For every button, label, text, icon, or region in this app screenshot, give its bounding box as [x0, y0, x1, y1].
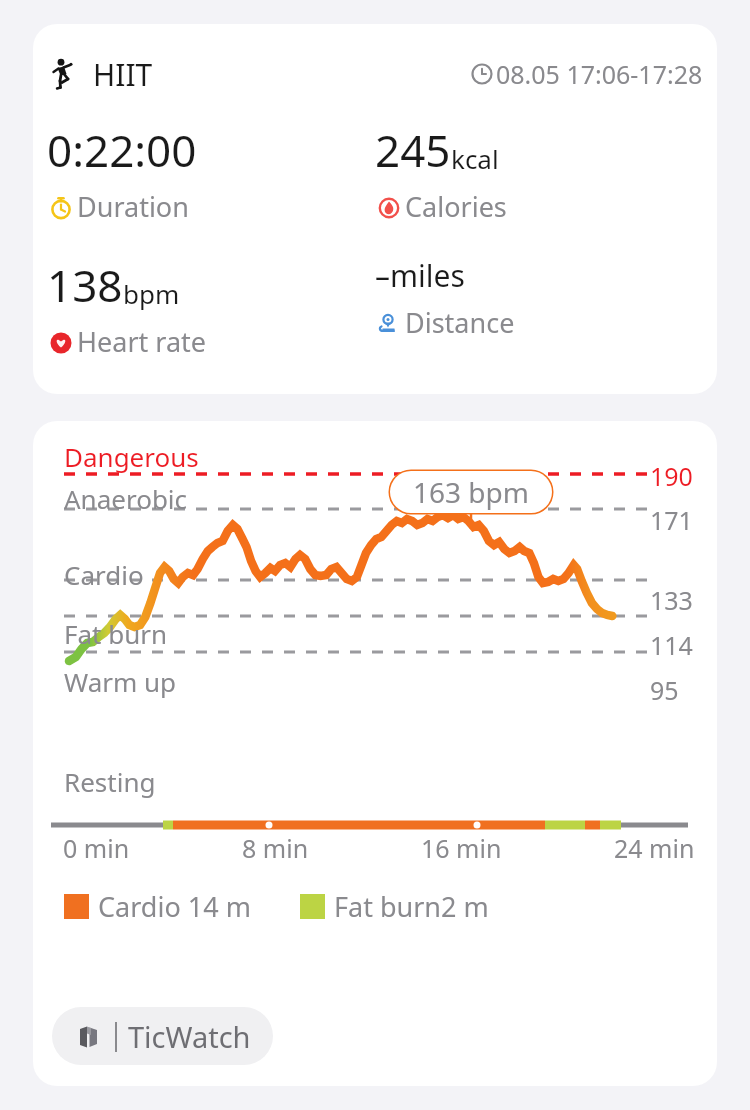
staticText: Anaerobic	[64, 481, 188, 516]
staticText: kcal	[451, 141, 499, 176]
staticText: Warm up	[64, 664, 177, 699]
staticText: Heart rate	[77, 323, 207, 360]
staticText: 114	[650, 628, 693, 662]
staticText: Duration	[77, 188, 189, 225]
staticText: 163 bpm	[413, 473, 529, 511]
staticText: Dangerous	[64, 439, 199, 474]
staticText: 24 min	[614, 831, 695, 865]
staticText: 138	[47, 255, 123, 315]
button[interactable]: 138	[47, 255, 375, 360]
staticText: 08.05 17:06-17:28	[496, 57, 703, 91]
staticText: 0:22:00	[47, 120, 197, 180]
staticText: 171	[650, 503, 693, 537]
button[interactable]: 0:22:00	[47, 120, 375, 225]
other: TicWatch logo	[74, 1022, 104, 1052]
staticText: Fat burn	[64, 616, 168, 651]
staticText: 190	[650, 459, 693, 493]
button[interactable]: –	[375, 255, 703, 341]
button[interactable]: 245	[375, 120, 703, 225]
staticText: 95	[650, 673, 679, 707]
staticText: –	[375, 255, 390, 296]
staticText: 16 min	[421, 831, 502, 865]
staticText: HIIT	[93, 54, 153, 95]
staticText: Fat burn2 m	[334, 888, 489, 925]
staticText: Calories	[405, 188, 507, 225]
staticText: Cardio 14 m	[98, 888, 251, 925]
staticText: TicWatch	[128, 1017, 251, 1056]
staticText: 133	[650, 583, 693, 617]
staticText: 8 min	[242, 831, 309, 865]
staticText: miles	[390, 255, 465, 296]
staticText: 245	[375, 120, 451, 180]
staticText: 0 min	[63, 831, 130, 865]
button[interactable]: TicWatch logo	[52, 1007, 273, 1065]
staticText: bpm	[123, 276, 180, 311]
staticText: Distance	[405, 304, 515, 341]
staticText: Resting	[64, 764, 156, 799]
staticText: Cardio	[64, 557, 144, 592]
